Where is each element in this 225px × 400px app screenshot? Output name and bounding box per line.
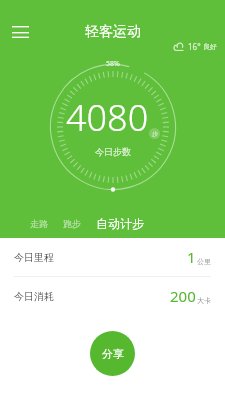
button[interactable]: 分享 xyxy=(90,331,135,376)
staticText: 58% xyxy=(106,59,120,69)
staticText: 跑步 xyxy=(63,218,81,229)
button[interactable]: 16° xyxy=(174,41,217,52)
staticText: 200 xyxy=(170,286,196,306)
staticText: 分享 xyxy=(102,347,124,361)
staticText: 步 xyxy=(152,130,158,138)
staticText: 今日步数 xyxy=(95,146,131,157)
button[interactable]: 今日里程 xyxy=(0,238,225,276)
staticText: 良好 xyxy=(203,42,217,51)
staticText: 1 xyxy=(187,247,196,267)
button[interactable]: 自动计步 xyxy=(92,214,148,233)
staticText: 自动计步 xyxy=(96,216,144,231)
staticText: 大卡 xyxy=(197,296,211,305)
staticText: 今日里程 xyxy=(14,251,54,264)
button[interactable]: 今日消耗 xyxy=(0,277,225,315)
button[interactable]: 跑步 xyxy=(59,216,85,231)
staticText: 公里 xyxy=(197,257,211,266)
staticText: 4080 xyxy=(66,93,149,142)
button[interactable]: 走路 xyxy=(26,216,52,231)
staticText: 16° xyxy=(188,41,201,52)
staticText: 走路 xyxy=(30,218,48,229)
staticText: 今日消耗 xyxy=(14,290,54,303)
button[interactable]: Menu xyxy=(6,18,34,46)
staticText: 轻客运动 xyxy=(85,23,141,41)
